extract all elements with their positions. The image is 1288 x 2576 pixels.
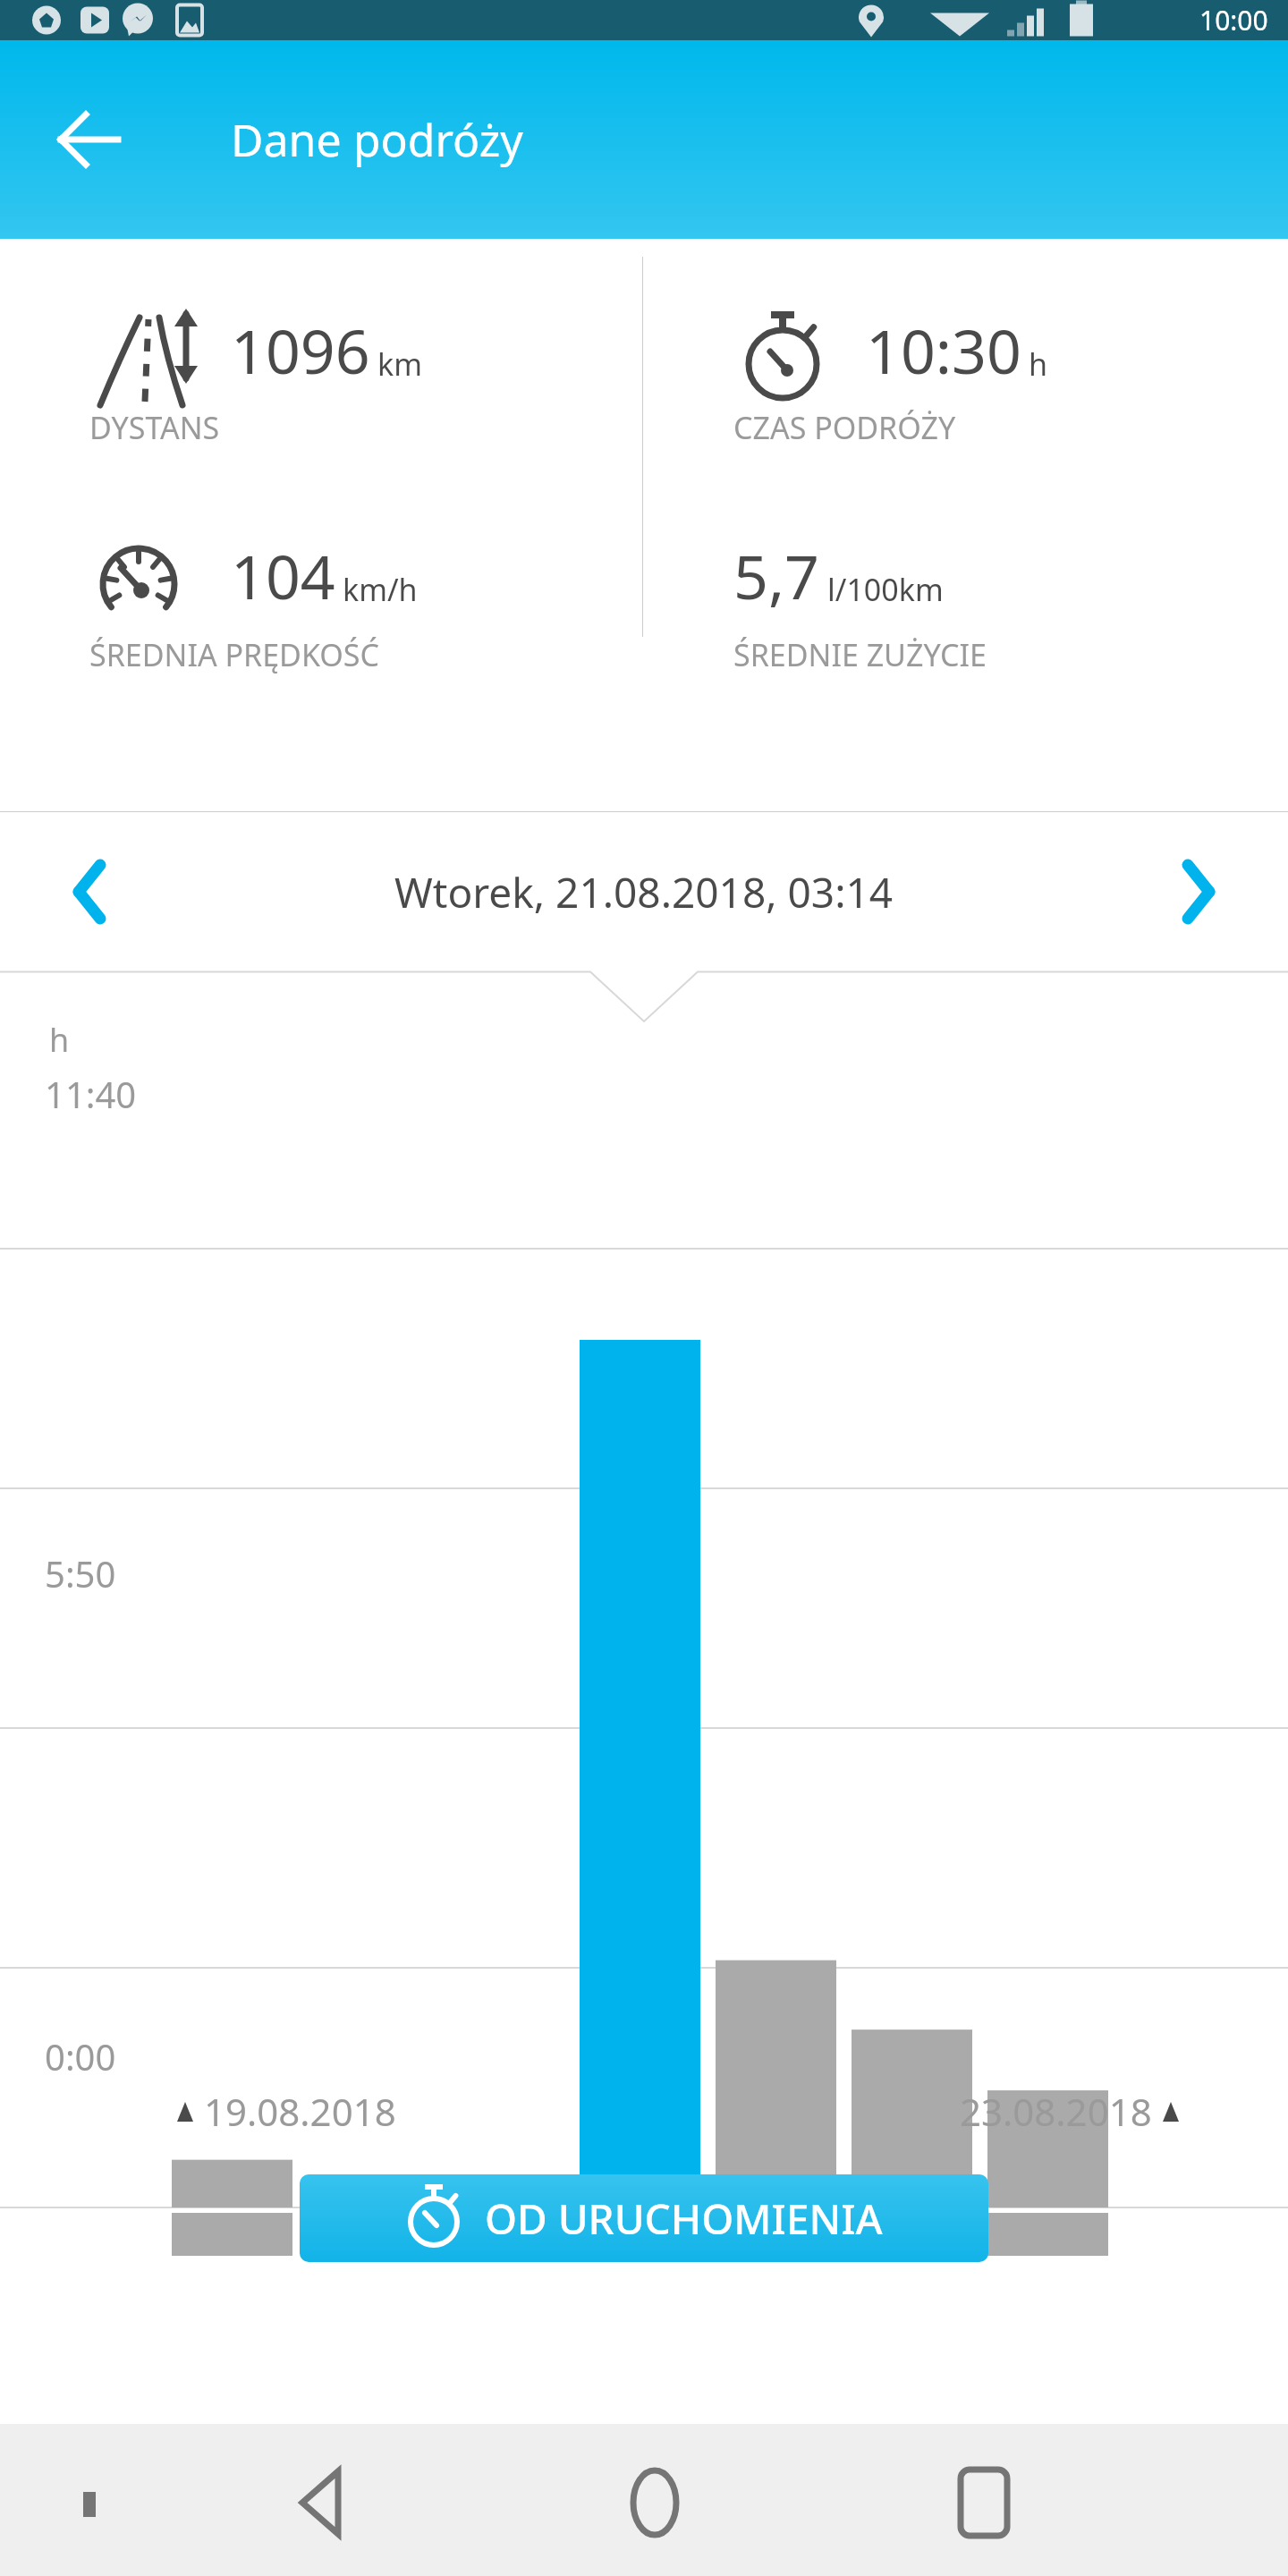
staticText: CZAS PODRÓŻY	[733, 407, 956, 448]
button[interactable]: Back	[277, 2458, 367, 2547]
staticText: 19.08.2018	[204, 2086, 396, 2137]
staticText: 10:00	[1199, 2, 1268, 38]
staticText: km/h	[343, 569, 418, 610]
staticText: 5:50	[45, 1549, 116, 1597]
button[interactable]: Back	[54, 104, 125, 175]
button[interactable]: Previous	[49, 852, 130, 932]
staticText: 11:40	[45, 1070, 137, 1118]
staticText: 0:00	[45, 2032, 116, 2080]
staticText: h	[49, 1018, 70, 1062]
staticText: 23.08.2018	[960, 2086, 1152, 2137]
staticText: 10:30	[866, 309, 1021, 392]
staticText: 5,7	[733, 534, 820, 617]
staticText: OD URUCHOMIENIA	[485, 2190, 883, 2247]
staticText: ŚREDNIA PRĘDKOŚĆ	[89, 634, 379, 675]
staticText: ŚREDNIE ZUŻYCIE	[733, 634, 987, 675]
staticText: l/100km	[827, 569, 944, 610]
staticText: DYSTANS	[89, 407, 220, 448]
button[interactable]: Recents	[939, 2458, 1029, 2547]
button[interactable]: Home	[610, 2458, 699, 2547]
staticText: km	[377, 343, 422, 385]
staticText: 104	[231, 534, 335, 617]
staticText: 1096	[231, 309, 370, 392]
button[interactable]: OD URUCHOMIENIA	[300, 2174, 988, 2262]
button[interactable]: Menu	[64, 2479, 114, 2529]
staticText: Wtorek, 21.08.2018, 03:14	[394, 864, 894, 920]
staticText: h	[1029, 343, 1048, 385]
button[interactable]: Next	[1158, 852, 1239, 932]
staticText: Dane podróży	[231, 109, 523, 170]
